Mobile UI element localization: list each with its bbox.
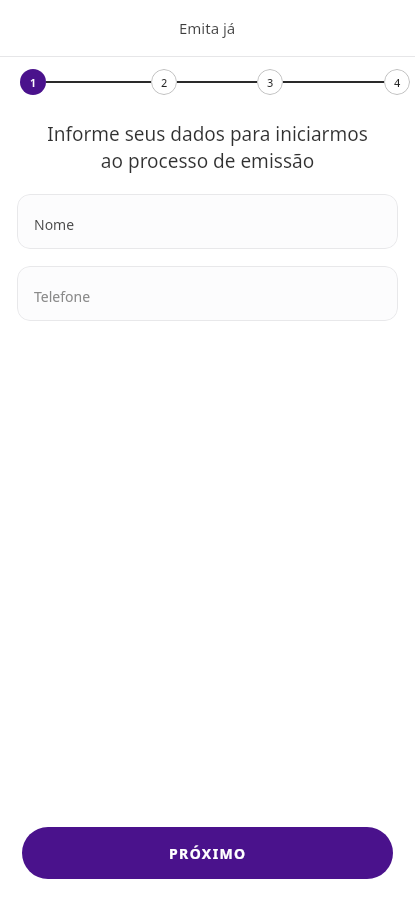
- button[interactable]: Etapa 4: [384, 69, 410, 95]
- staticText: Emita já: [179, 18, 236, 38]
- button[interactable]: Telefone: [17, 266, 398, 321]
- staticText: Nome: [34, 215, 75, 234]
- staticText: 1: [30, 75, 37, 90]
- staticText: 2: [161, 75, 168, 90]
- staticText: PRÓXIMO: [169, 844, 247, 863]
- staticText: 4: [394, 75, 401, 90]
- staticText: Telefone: [34, 287, 91, 306]
- staticText: 3: [267, 75, 274, 90]
- button[interactable]: Etapa 3: [257, 69, 283, 95]
- button[interactable]: Etapa 1: [20, 69, 46, 95]
- button[interactable]: PRÓXIMO: [22, 827, 393, 879]
- button[interactable]: Nome: [17, 194, 398, 249]
- staticText: Informe seus dados para iniciarmos ao pr…: [34, 121, 381, 174]
- button[interactable]: Etapa 2: [151, 69, 177, 95]
